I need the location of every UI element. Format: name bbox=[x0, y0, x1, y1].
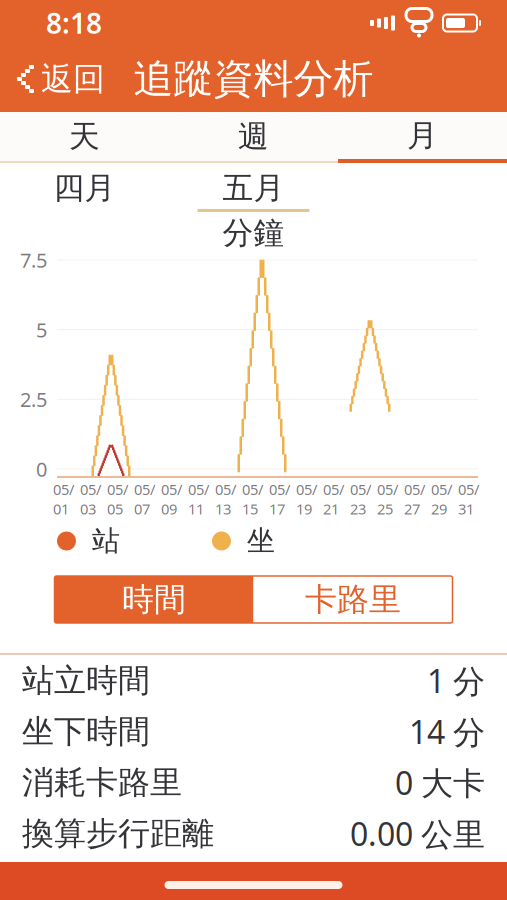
staticText: 0 大卡 bbox=[395, 761, 485, 804]
staticText: 月 bbox=[407, 117, 438, 154]
staticText: 05/09 bbox=[161, 479, 182, 518]
staticText: 05/29 bbox=[431, 479, 452, 518]
staticText: 分鐘 bbox=[222, 214, 284, 252]
button[interactable]: 月 bbox=[338, 112, 507, 163]
staticText: 站 bbox=[92, 524, 120, 558]
staticText: 2.5 bbox=[20, 386, 47, 413]
staticText: 追蹤資料分析 bbox=[133, 54, 373, 103]
staticText: 05/31 bbox=[458, 479, 479, 518]
staticText: 坐 bbox=[247, 524, 275, 558]
staticText: 換算步行距離 bbox=[22, 814, 214, 853]
staticText: 05/27 bbox=[404, 479, 425, 518]
button[interactable]: 返回 bbox=[0, 49, 119, 109]
staticText: 站立時間 bbox=[22, 661, 150, 700]
button[interactable]: 卡路里 bbox=[253, 576, 452, 623]
button[interactable]: 換算步行距離 bbox=[0, 808, 507, 859]
button[interactable]: 時間 bbox=[54, 576, 253, 623]
staticText: 0 bbox=[36, 456, 47, 482]
staticText: 五月 bbox=[222, 169, 284, 207]
staticText: 05/17 bbox=[269, 479, 290, 518]
staticText: 消耗卡路里 bbox=[22, 763, 182, 802]
staticText: 四月 bbox=[53, 169, 115, 207]
staticText: 05/03 bbox=[80, 479, 101, 518]
staticText: 0.00 公里 bbox=[350, 812, 485, 855]
button[interactable]: 消耗卡路里 bbox=[0, 757, 507, 808]
staticText: 05/11 bbox=[188, 479, 209, 518]
button[interactable]: 站立時間 bbox=[0, 655, 507, 706]
button[interactable]: 週 bbox=[169, 112, 338, 163]
button[interactable]: 天 bbox=[0, 112, 169, 163]
staticText: 時間 bbox=[122, 580, 186, 619]
staticText: 05/25 bbox=[377, 479, 398, 518]
staticText: 週 bbox=[238, 118, 269, 155]
staticText: 05/19 bbox=[296, 479, 317, 518]
staticText: 05/21 bbox=[323, 479, 344, 518]
staticText: 05/01 bbox=[53, 479, 74, 518]
staticText: 05/23 bbox=[350, 479, 371, 518]
staticText: 1 分 bbox=[427, 659, 485, 702]
button[interactable]: 五月 bbox=[169, 167, 338, 215]
staticText: 05/07 bbox=[134, 479, 155, 518]
staticText: 卡路里 bbox=[305, 580, 401, 619]
staticText: 5 bbox=[36, 316, 47, 343]
button[interactable]: 坐下時間 bbox=[0, 706, 507, 757]
staticText: 14 分 bbox=[409, 710, 485, 753]
staticText: 7.5 bbox=[20, 247, 47, 273]
staticText: 天 bbox=[69, 118, 100, 155]
staticText: 8:18 bbox=[46, 4, 102, 42]
staticText: 05/13 bbox=[215, 479, 236, 518]
staticText: 返回 bbox=[41, 59, 105, 99]
staticText: 05/15 bbox=[242, 479, 263, 518]
staticText: 05/05 bbox=[107, 479, 128, 518]
staticText: 坐下時間 bbox=[22, 712, 150, 751]
button[interactable]: 四月 bbox=[0, 167, 169, 215]
